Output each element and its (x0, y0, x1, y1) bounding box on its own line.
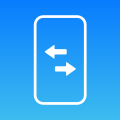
button[interactable]: Transfer (0, 0, 120, 120)
